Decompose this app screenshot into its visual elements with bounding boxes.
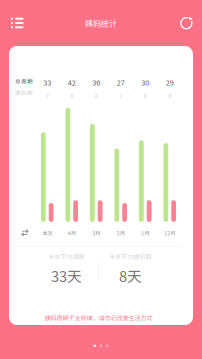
staticText: 8 — [95, 91, 98, 100]
staticText: 3月 — [92, 229, 100, 237]
staticText: 总周期 — [15, 77, 33, 85]
staticText: 姨妈周期不太规律，请勿必改善生活方式 — [44, 313, 152, 322]
staticText: 27 — [117, 77, 125, 88]
staticText: 半年平均姨妈期 — [109, 252, 151, 261]
staticText: 姨妈期 — [15, 88, 33, 97]
staticText: 1月 — [141, 229, 149, 237]
staticText: 7 — [46, 91, 49, 100]
staticText: 姨妈统计 — [85, 17, 117, 29]
staticText: 33 — [43, 77, 51, 88]
staticText: 12月 — [164, 229, 175, 237]
staticText: 33天 — [51, 265, 82, 286]
staticText: 半年平均周期 — [49, 252, 85, 261]
button[interactable]: Refresh — [177, 13, 196, 33]
staticText: 30 — [141, 77, 149, 88]
staticText: 8 — [168, 91, 171, 100]
staticText: 36 — [92, 77, 100, 88]
staticText: 7 — [119, 91, 122, 100]
staticText: 2月 — [117, 229, 125, 237]
staticText: 8天 — [119, 265, 142, 286]
staticText: 29 — [166, 77, 174, 88]
staticText: 4月 — [68, 229, 76, 237]
button[interactable]: Menu — [7, 14, 27, 32]
staticText: 8 — [70, 91, 73, 100]
staticText: 42 — [68, 77, 76, 88]
staticText: 本次 — [42, 229, 52, 237]
staticText: 8 — [144, 91, 147, 100]
